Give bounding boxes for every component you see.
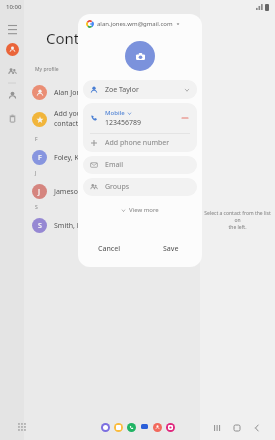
button[interactable]: Add your [24, 105, 200, 133]
button[interactable]: Trash [4, 110, 20, 126]
button[interactable]: Add phone number [83, 134, 197, 152]
staticText: S [38, 221, 42, 231]
staticText: 10:00 [6, 3, 22, 11]
button[interactable]: Change photo [125, 41, 155, 71]
button[interactable]: Contacts [4, 63, 20, 79]
button[interactable]: Save [140, 235, 202, 263]
button[interactable]: Email [83, 156, 197, 174]
button[interactable]: Groups [83, 178, 197, 196]
staticText: Zoe Taylor [105, 85, 139, 95]
staticText: View more [129, 206, 159, 214]
staticText: contacts [54, 119, 82, 129]
staticText: Save [163, 244, 179, 254]
button[interactable]: Phone [101, 423, 110, 432]
button[interactable]: All apps [18, 423, 26, 431]
staticText: Select a contact from the list on the le… [204, 210, 271, 231]
staticText: Mobile [105, 109, 125, 117]
staticText: S [35, 204, 38, 211]
staticText: F [38, 153, 42, 163]
button[interactable]: S [24, 213, 200, 238]
button[interactable]: Add contact [4, 87, 20, 103]
button[interactable]: View more [78, 203, 202, 217]
button[interactable]: alan.jones.wm@gmail.com [78, 14, 202, 34]
button[interactable]: Profile [6, 43, 19, 56]
button[interactable]: Camera [166, 423, 175, 432]
button[interactable]: Remove [180, 113, 190, 123]
button[interactable]: Cancel [78, 235, 140, 263]
staticText: Smith, Maria [54, 221, 96, 231]
staticText: Foley, Kelly [54, 153, 90, 163]
button[interactable]: Alan Jones [24, 80, 200, 105]
button[interactable]: J [24, 179, 200, 204]
staticText: Add your [54, 109, 84, 119]
button[interactable]: Home [232, 423, 241, 432]
button[interactable]: F [24, 145, 200, 170]
button[interactable]: Messages [140, 423, 149, 432]
staticText: 123456789 [105, 118, 142, 128]
staticText: J [38, 187, 41, 197]
staticText: Contacts [46, 28, 108, 48]
button[interactable]: Menu [3, 20, 21, 38]
staticText: Groups [105, 182, 130, 192]
button[interactable]: Zoe Taylor [83, 80, 197, 99]
staticText: J [35, 170, 37, 177]
button[interactable]: Recents [212, 423, 221, 432]
button[interactable]: Contacts [153, 423, 162, 432]
button[interactable]: Back [252, 423, 261, 432]
staticText: Add phone number [105, 138, 170, 148]
staticText: alan.jones.wm@gmail.com [97, 20, 173, 28]
staticText: My profile [35, 66, 59, 73]
staticText: Jameson [54, 187, 83, 197]
button[interactable]: Mobile [83, 103, 197, 133]
staticText: Email [105, 160, 123, 170]
button[interactable]: Files [114, 423, 123, 432]
button[interactable]: Dialer [127, 423, 136, 432]
staticText: F [35, 136, 38, 143]
staticText: Cancel [98, 244, 121, 254]
staticText: Alan Jones [54, 88, 89, 98]
